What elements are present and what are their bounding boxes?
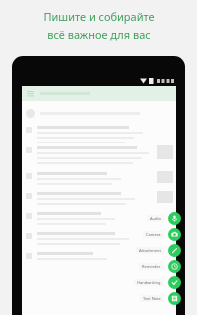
button[interactable]: Handwriting bbox=[134, 276, 181, 289]
button[interactable] bbox=[22, 103, 176, 123]
staticText: Reminder bbox=[142, 264, 161, 269]
button[interactable] bbox=[22, 123, 176, 143]
button[interactable]: Text Note bbox=[140, 292, 181, 305]
staticText: Handwriting bbox=[137, 280, 161, 285]
button[interactable]: Reminder bbox=[139, 260, 181, 273]
button[interactable] bbox=[22, 209, 176, 229]
staticText: Camera bbox=[146, 232, 161, 237]
button[interactable] bbox=[22, 143, 176, 169]
staticText: Пишите и собирайте bbox=[43, 9, 155, 24]
button[interactable] bbox=[22, 189, 176, 209]
button[interactable] bbox=[22, 169, 176, 189]
button[interactable] bbox=[22, 249, 176, 269]
staticText: всё важное для вас bbox=[47, 27, 151, 42]
button[interactable]: Audio bbox=[147, 212, 181, 225]
staticText: Audio bbox=[150, 216, 161, 221]
button[interactable]: Attachment bbox=[136, 244, 181, 257]
button[interactable]: Camera bbox=[143, 228, 181, 241]
button[interactable] bbox=[22, 229, 176, 249]
staticText: Text Note bbox=[143, 296, 161, 301]
staticText: Attachment bbox=[139, 248, 161, 253]
